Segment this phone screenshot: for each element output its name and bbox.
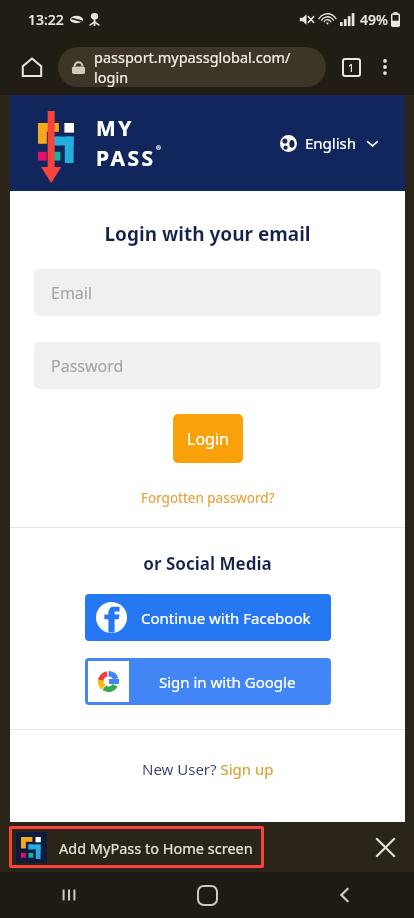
button[interactable]: Continue with Facebook (85, 594, 331, 641)
button[interactable]: Sign in with Google (85, 658, 331, 705)
staticText: passport.mypassglobal.com/login (94, 47, 312, 87)
staticText: New User? Sign up (142, 759, 274, 779)
button[interactable]: Email (34, 269, 381, 316)
staticText: Continue with Facebook (141, 608, 311, 628)
staticText: or Social Media (10, 552, 405, 575)
button[interactable]: Login (173, 414, 243, 463)
button[interactable]: More options (368, 50, 402, 84)
staticText: MY (96, 114, 134, 143)
button[interactable]: Forgotten password? (135, 486, 281, 510)
button[interactable]: Home (138, 872, 276, 918)
staticText: 13:22 (28, 10, 64, 29)
staticText: Password (51, 355, 124, 377)
button[interactable]: Back (276, 872, 414, 918)
staticText: Add MyPass to Home screen (59, 838, 253, 858)
staticText: English (305, 133, 357, 153)
button[interactable]: Tabs (334, 50, 368, 84)
button[interactable]: English (276, 129, 383, 157)
staticText: 1 (348, 60, 355, 75)
staticText: Login (187, 428, 229, 450)
staticText: 49% (360, 10, 388, 29)
staticText: Login with your email (10, 221, 405, 247)
staticText: PASS (96, 144, 156, 173)
button[interactable]: passport.mypassglobal.com/login (72, 47, 312, 87)
button[interactable]: Add MyPass to Home screen (0, 822, 414, 872)
button[interactable]: Close (362, 824, 408, 870)
staticText: Forgotten password? (141, 489, 275, 507)
button[interactable]: Password (34, 342, 381, 389)
button[interactable]: New User? Sign up (138, 755, 278, 783)
button[interactable]: Home (12, 47, 52, 87)
staticText: ® (156, 144, 161, 152)
staticText: Email (51, 282, 93, 304)
button[interactable]: Recents (0, 872, 138, 918)
staticText: Sign in with Google (159, 672, 296, 692)
